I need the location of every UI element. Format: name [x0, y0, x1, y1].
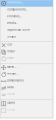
staticText: Shape	[7, 35, 16, 38]
button[interactable]: Cut	[0, 42, 53, 48]
staticText: Close	[7, 108, 15, 111]
staticText: Cut	[7, 43, 12, 46]
staticText: Attributes…	[7, 1, 23, 4]
staticText: Finishes…	[7, 15, 21, 18]
staticText: Rotate…	[7, 72, 18, 75]
button[interactable]: Hide	[0, 85, 53, 91]
staticText: Copy	[7, 50, 14, 53]
button[interactable]: Copy	[0, 49, 53, 55]
button[interactable]: Paste	[0, 55, 53, 62]
button[interactable]: AppleCart Style	[0, 27, 53, 34]
staticText: AppleCart Style	[7, 28, 30, 31]
button[interactable]: Components…	[0, 7, 53, 13]
staticText: Components…	[7, 8, 27, 11]
staticText: Hide	[7, 86, 14, 89]
staticText: Close	[7, 92, 15, 96]
staticText: Move…	[7, 65, 16, 68]
staticText: Open	[7, 101, 15, 104]
button[interactable]: Attributes…	[0, 0, 53, 7]
button[interactable]: Finishes…	[0, 14, 53, 20]
button[interactable]: Shape	[0, 34, 53, 41]
button[interactable]: Close	[0, 107, 53, 114]
button[interactable]: Dimensions	[0, 78, 53, 84]
button[interactable]: Open	[0, 100, 53, 107]
button[interactable]: Move…	[0, 64, 53, 71]
staticText: Paste	[7, 56, 14, 60]
button[interactable]: Rotate…	[0, 71, 53, 78]
button[interactable]: Prints…	[0, 20, 53, 27]
staticText: Prints…	[7, 21, 17, 25]
button[interactable]: Close	[0, 91, 53, 98]
staticText: Dimensions	[7, 79, 23, 82]
